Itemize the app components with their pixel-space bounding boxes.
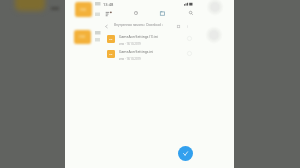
staticText: INI xyxy=(80,7,87,13)
button[interactable]: Sort xyxy=(103,8,113,18)
staticText: ини · 18.10.2019 xyxy=(119,42,141,46)
button[interactable]: Recent files xyxy=(131,8,141,18)
button[interactable]: Select xyxy=(185,49,194,58)
button[interactable]: Up one level xyxy=(102,22,110,30)
staticText: INI xyxy=(79,34,86,40)
staticText: ини · 18.10.2019 xyxy=(119,57,141,61)
button[interactable]: INI xyxy=(100,31,199,46)
staticText: INI xyxy=(109,53,113,56)
button[interactable]: View mode xyxy=(174,22,182,30)
button[interactable]: Search xyxy=(186,8,196,18)
staticText: INI xyxy=(109,38,113,41)
staticText: Внутренняя память › Download › xyxy=(114,23,163,27)
button[interactable]: Select xyxy=(185,34,194,43)
staticText: GameAcerSettings (1).ini xyxy=(119,34,159,39)
staticText: GameAcerSettings.ini xyxy=(119,49,154,54)
button[interactable]: Confirm selection xyxy=(178,146,193,161)
button[interactable]: More options xyxy=(183,22,191,30)
button[interactable]: Categories xyxy=(157,8,167,18)
button[interactable]: INI xyxy=(100,46,199,61)
staticText: 13:48 xyxy=(103,2,114,7)
